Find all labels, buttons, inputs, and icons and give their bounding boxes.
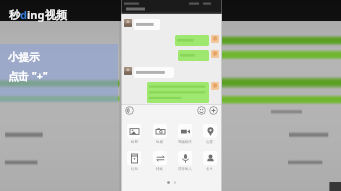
staticText: ing xyxy=(27,7,45,22)
button[interactable] xyxy=(175,35,209,46)
button[interactable] xyxy=(211,82,219,90)
staticText: 视频 xyxy=(45,8,67,22)
button[interactable]: Red packet xyxy=(121,151,147,171)
staticText: 小提示 xyxy=(8,51,40,64)
button[interactable] xyxy=(211,35,219,43)
button[interactable]: Contact card xyxy=(197,151,222,171)
button[interactable]: Voice input xyxy=(125,106,134,115)
button[interactable]: Transfer xyxy=(147,151,172,171)
button[interactable]: Video chat xyxy=(172,124,197,144)
button[interactable]: Location xyxy=(197,124,222,144)
button[interactable]: Voice input xyxy=(172,151,197,171)
staticText: 视频聊天 xyxy=(178,140,192,144)
staticText: 语音输入 xyxy=(178,167,192,171)
button[interactable] xyxy=(134,67,174,78)
staticText: 相册 xyxy=(131,140,138,144)
button[interactable] xyxy=(211,50,219,58)
staticText: 转账 xyxy=(156,167,163,171)
staticText: 拍摄 xyxy=(156,140,163,144)
staticText: 秒 xyxy=(9,8,20,22)
staticText: 名片 xyxy=(206,167,213,171)
button[interactable]: Camera xyxy=(147,124,172,144)
staticText: 红包 xyxy=(131,167,138,171)
staticText: 点击 "+" xyxy=(8,69,48,83)
button[interactable] xyxy=(124,67,132,75)
staticText: d xyxy=(20,7,27,22)
button[interactable]: Photos xyxy=(121,124,147,144)
button[interactable] xyxy=(178,50,209,61)
button[interactable]: 小提示 xyxy=(0,44,118,102)
staticText: 位置 xyxy=(206,140,213,144)
button[interactable] xyxy=(124,19,132,27)
button[interactable]: Emoji xyxy=(197,106,206,115)
button[interactable]: More options xyxy=(209,106,218,115)
button[interactable] xyxy=(147,82,209,103)
button[interactable] xyxy=(134,19,160,30)
